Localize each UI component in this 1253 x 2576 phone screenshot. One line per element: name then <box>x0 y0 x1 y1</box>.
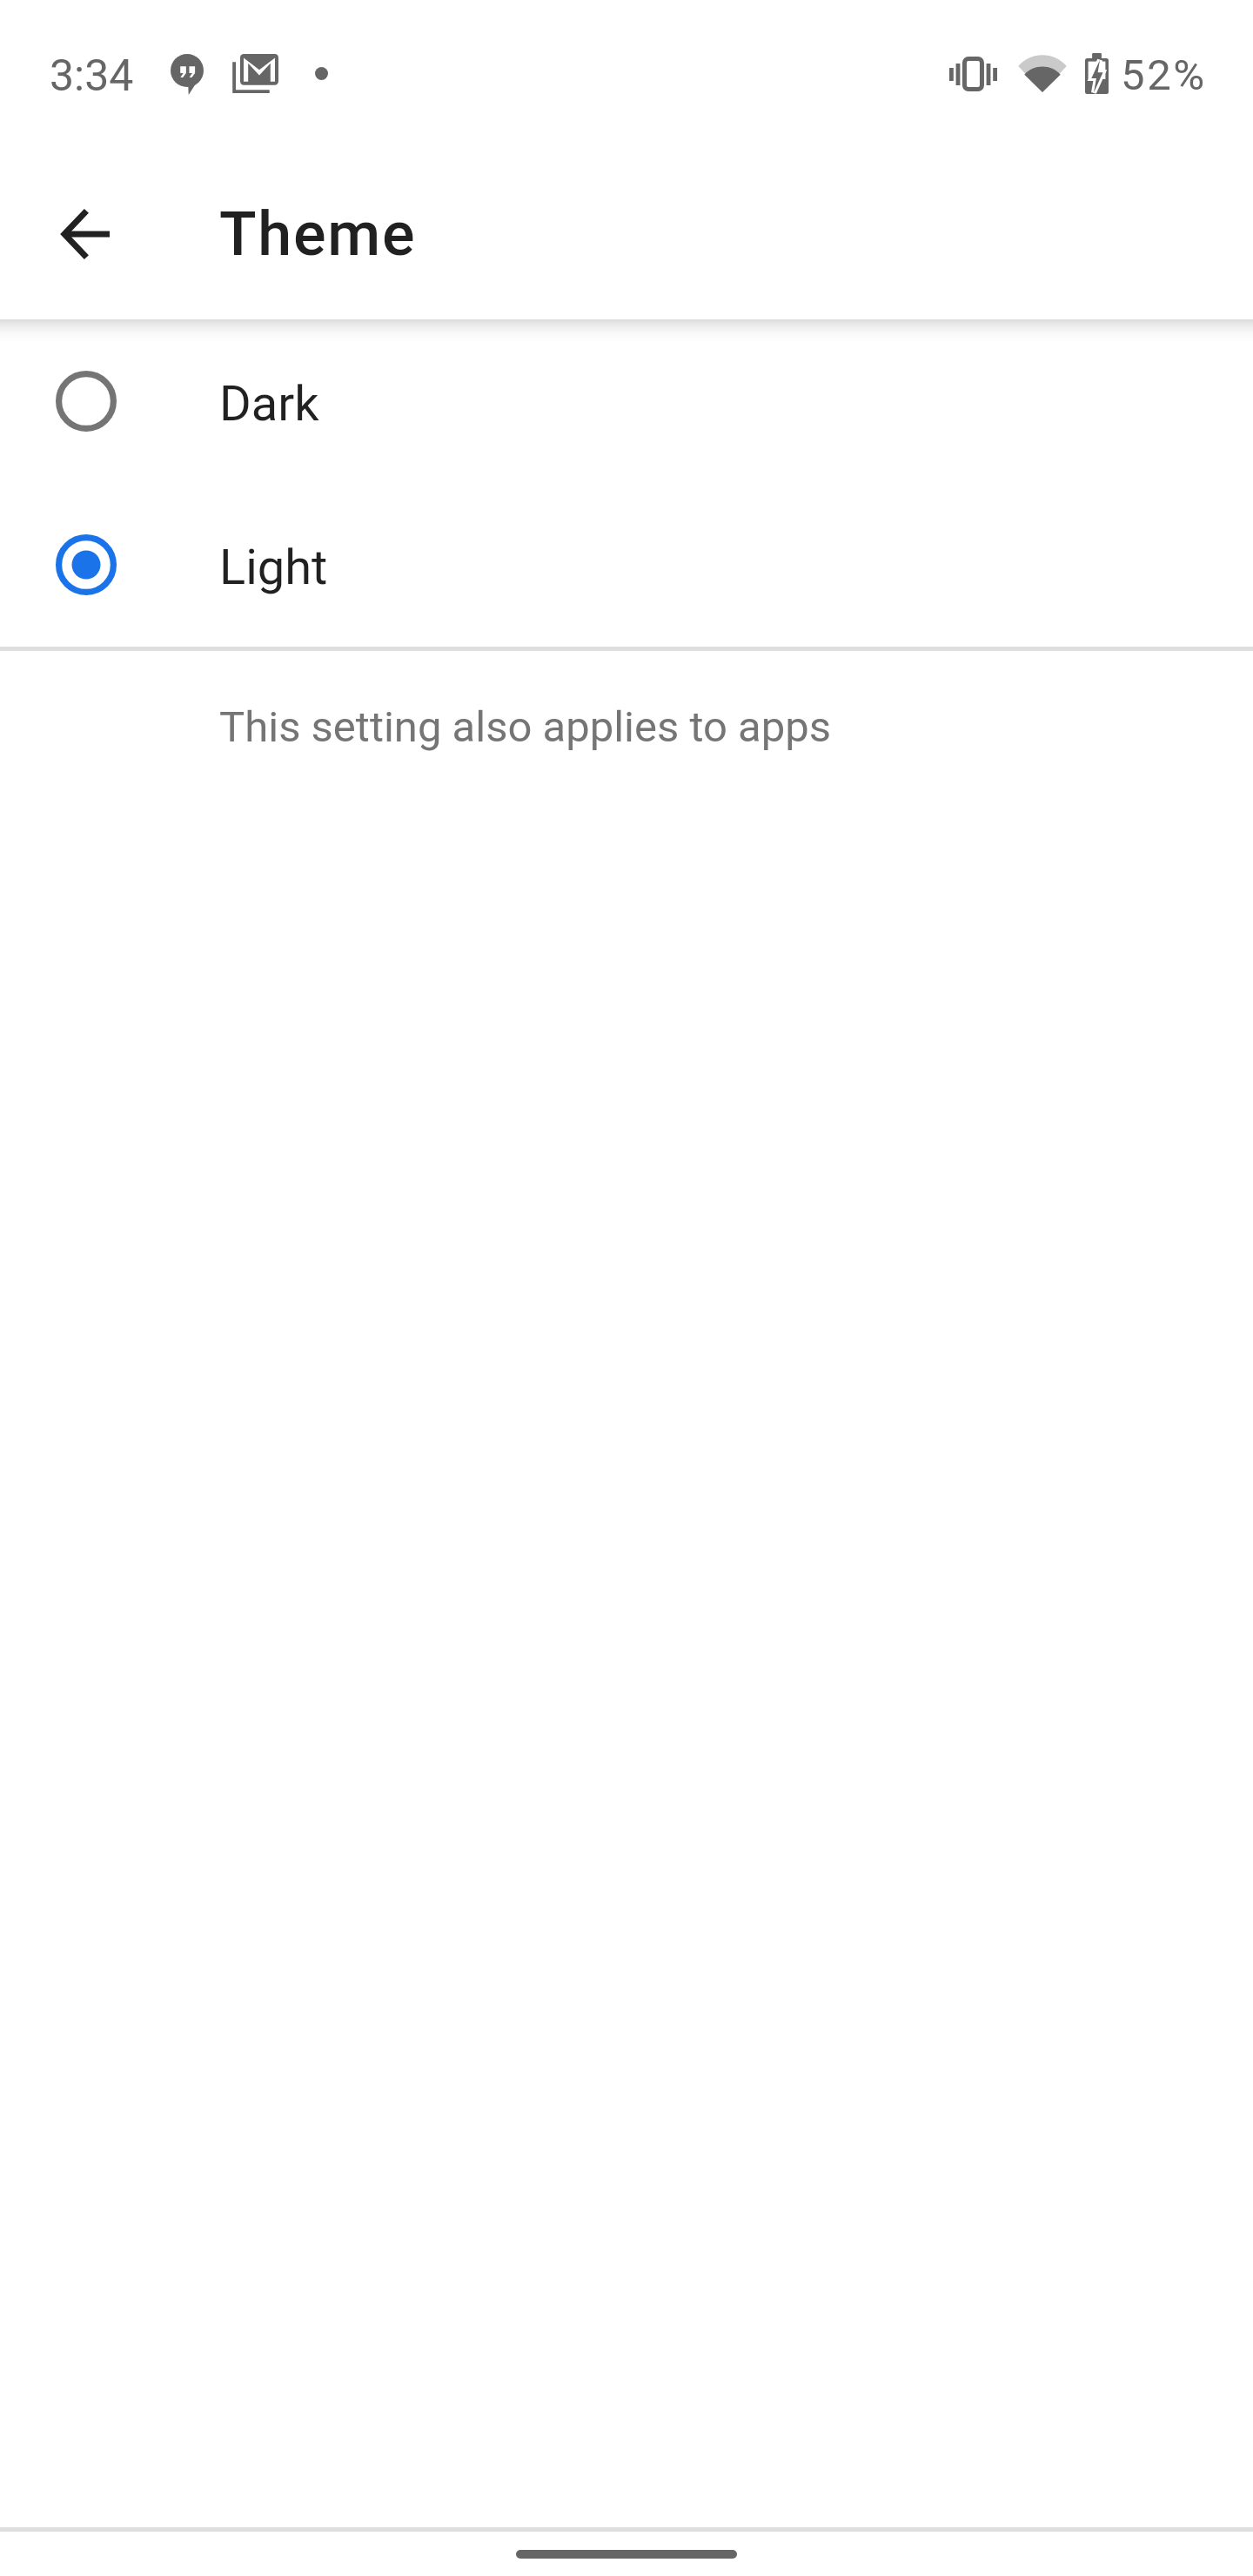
button[interactable]: Light <box>0 483 1253 647</box>
staticText: 52% <box>1121 50 1207 100</box>
button[interactable]: Dark <box>0 319 1253 483</box>
staticText: Light <box>219 539 328 596</box>
staticText: 3:34 <box>50 50 134 102</box>
staticText: Theme <box>219 198 417 270</box>
button[interactable]: Back <box>37 185 134 283</box>
button[interactable]: Home <box>516 2550 737 2559</box>
staticText: This setting also applies to apps <box>219 702 832 752</box>
staticText: Dark <box>219 375 319 433</box>
